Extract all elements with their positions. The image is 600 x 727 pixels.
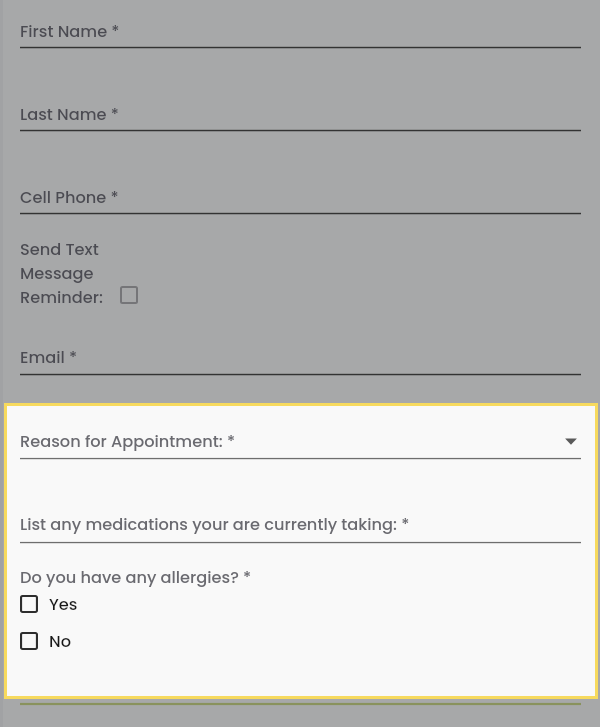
button[interactable]: First Name, required text field (20, 18, 581, 48)
button[interactable]: List any medications your are currently … (20, 511, 581, 543)
staticText: No (49, 630, 71, 648)
staticText: Do you have any allergies? * (20, 566, 252, 589)
button[interactable]: Send text message reminder (120, 286, 138, 304)
button[interactable]: Last Name, required text field (20, 101, 581, 131)
button[interactable]: Cell Phone, required text field (20, 184, 581, 214)
staticText: Reminder: (20, 286, 103, 309)
staticText: Reason for Appointment: * (20, 430, 236, 453)
staticText: Email * (20, 346, 78, 369)
button[interactable]: Open appointment reason dropdown (560, 433, 582, 455)
staticText: Message (20, 262, 94, 285)
staticText: Cell Phone * (20, 186, 119, 209)
button[interactable]: No (20, 632, 76, 650)
button[interactable]: Email, required text field (20, 344, 581, 375)
button[interactable]: Reason for Appointment, required (20, 428, 581, 459)
button[interactable]: Yes (20, 595, 80, 613)
button[interactable]: Send Text (20, 236, 140, 306)
staticText: Yes (49, 593, 78, 611)
staticText: Last Name * (20, 103, 119, 126)
staticText: List any medications your are currently … (20, 513, 410, 536)
staticText: First Name * (20, 20, 120, 43)
staticText: Send Text (20, 238, 99, 261)
